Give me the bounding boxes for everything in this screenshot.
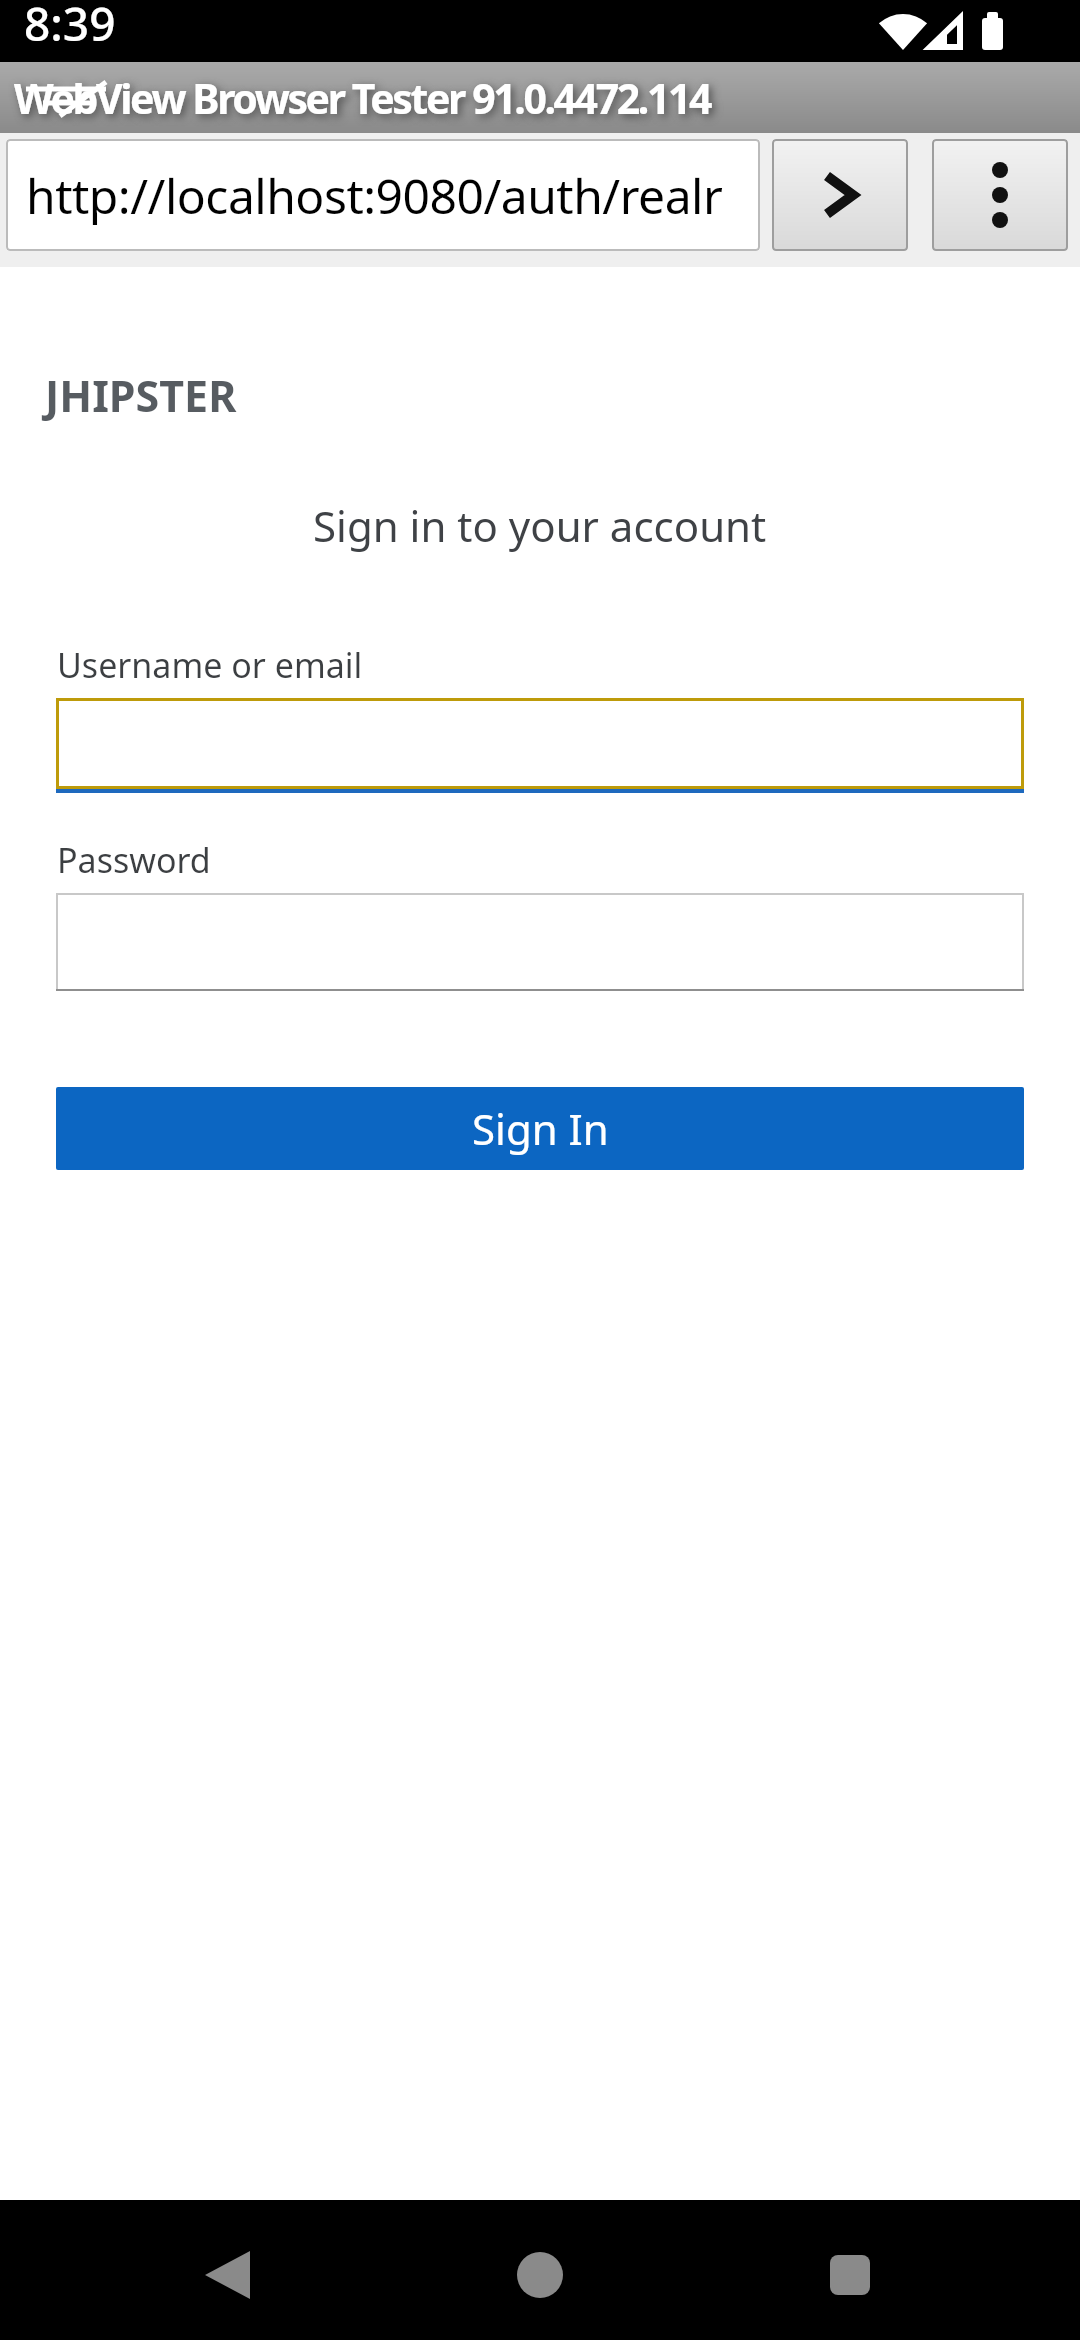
button[interactable] <box>56 698 1024 793</box>
button[interactable] <box>772 139 908 251</box>
staticText: JHIPSTER <box>45 366 237 425</box>
staticText: Sign in to your account <box>313 497 767 554</box>
button[interactable] <box>0 2200 360 2340</box>
staticText: 8:39 <box>24 0 116 54</box>
staticText: http://localhost:9080/auth/realr <box>26 163 723 228</box>
button[interactable]: http://localhost:9080/auth/realr <box>6 139 760 251</box>
button[interactable] <box>360 2200 720 2340</box>
button[interactable]: Sign In <box>56 1087 1024 1170</box>
button[interactable] <box>56 893 1024 991</box>
staticText: Sign In <box>472 1100 609 1157</box>
button[interactable] <box>720 2200 1080 2340</box>
staticText: WebView Browser Tester 91.0.4472.114 <box>14 70 711 126</box>
button[interactable] <box>932 139 1068 251</box>
staticText: Username or email <box>57 642 363 688</box>
staticText: Password <box>57 837 211 883</box>
